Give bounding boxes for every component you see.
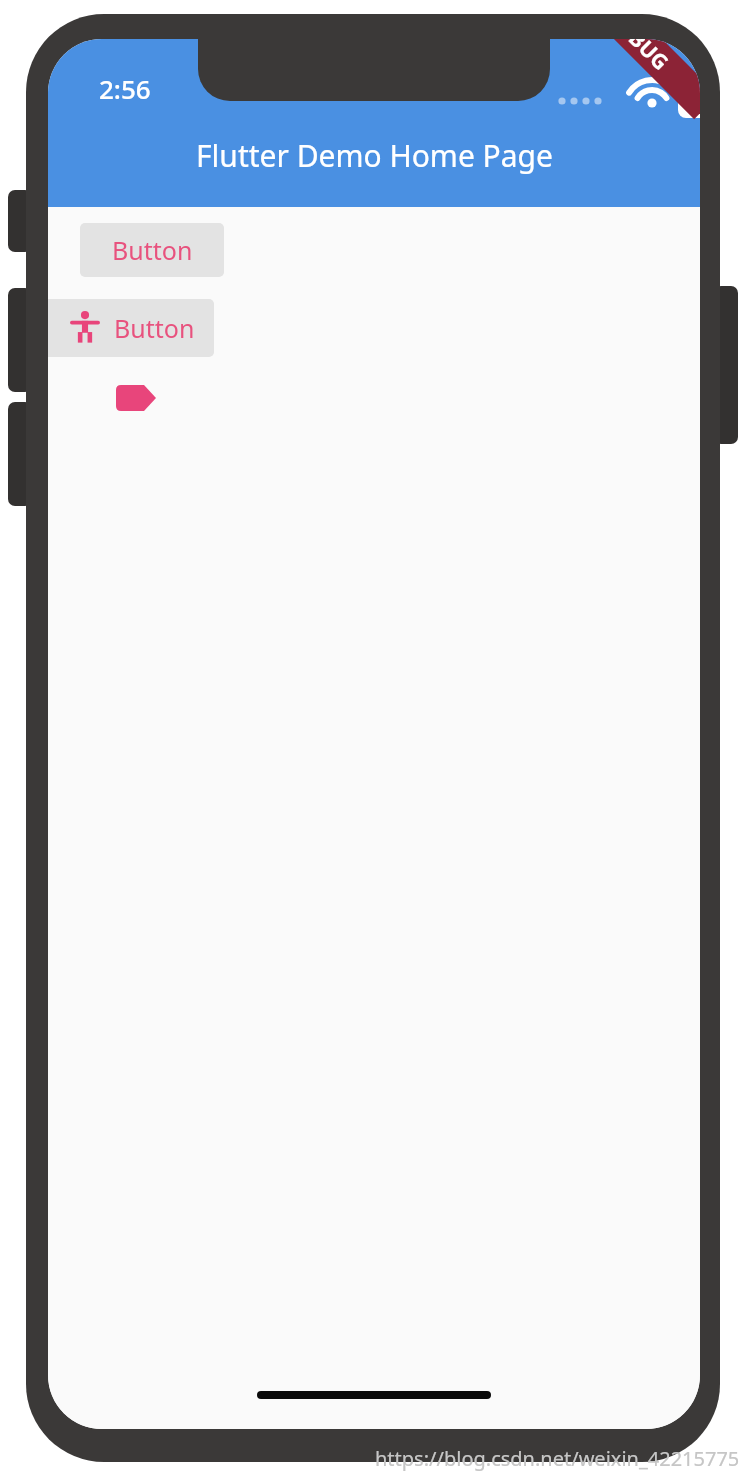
staticText: DEBUG	[603, 39, 675, 77]
staticText: Button	[112, 233, 193, 267]
staticText: Button	[114, 311, 195, 345]
staticText: https://blog.csdn.net/weixin_42215775	[375, 1445, 740, 1472]
button[interactable]: Button	[80, 223, 224, 277]
button[interactable]: Button	[48, 299, 214, 357]
staticText: 2:56	[99, 71, 151, 106]
button[interactable]: Label tag	[116, 385, 156, 411]
staticText: Flutter Demo Home Page	[196, 135, 553, 176]
